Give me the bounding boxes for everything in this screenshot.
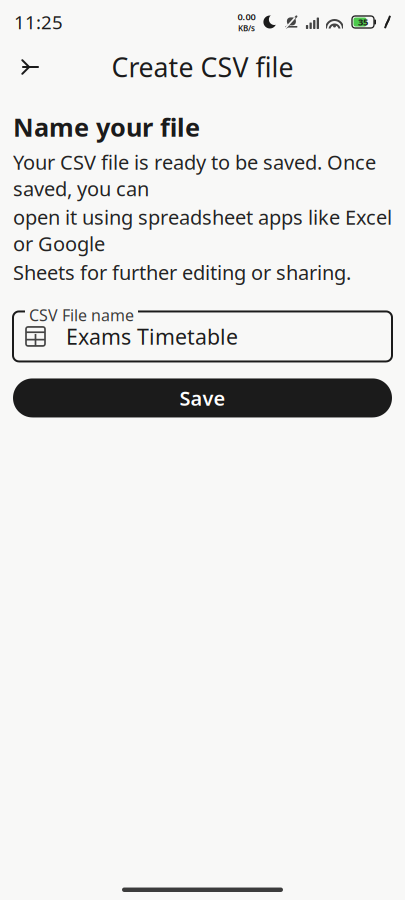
button[interactable]: Save [13,378,392,417]
staticText: Save [179,385,225,411]
staticText: Sheets for further editing or sharing. [13,259,351,285]
staticText: Name your file [13,110,200,144]
staticText: KB/s [238,23,255,33]
staticText: CSV File name [29,304,134,326]
staticText: Exams Timetable [66,322,238,351]
staticText: Your CSV file is ready to be saved. Once… [13,149,376,202]
staticText: Create CSV file [111,49,293,85]
staticText: 35 [358,16,368,28]
staticText: 11:25 [14,10,63,34]
button[interactable]: Back [6,44,52,90]
staticText: 0.00 [237,10,255,23]
staticText: open it using spreadsheet apps like Exce… [13,204,392,257]
